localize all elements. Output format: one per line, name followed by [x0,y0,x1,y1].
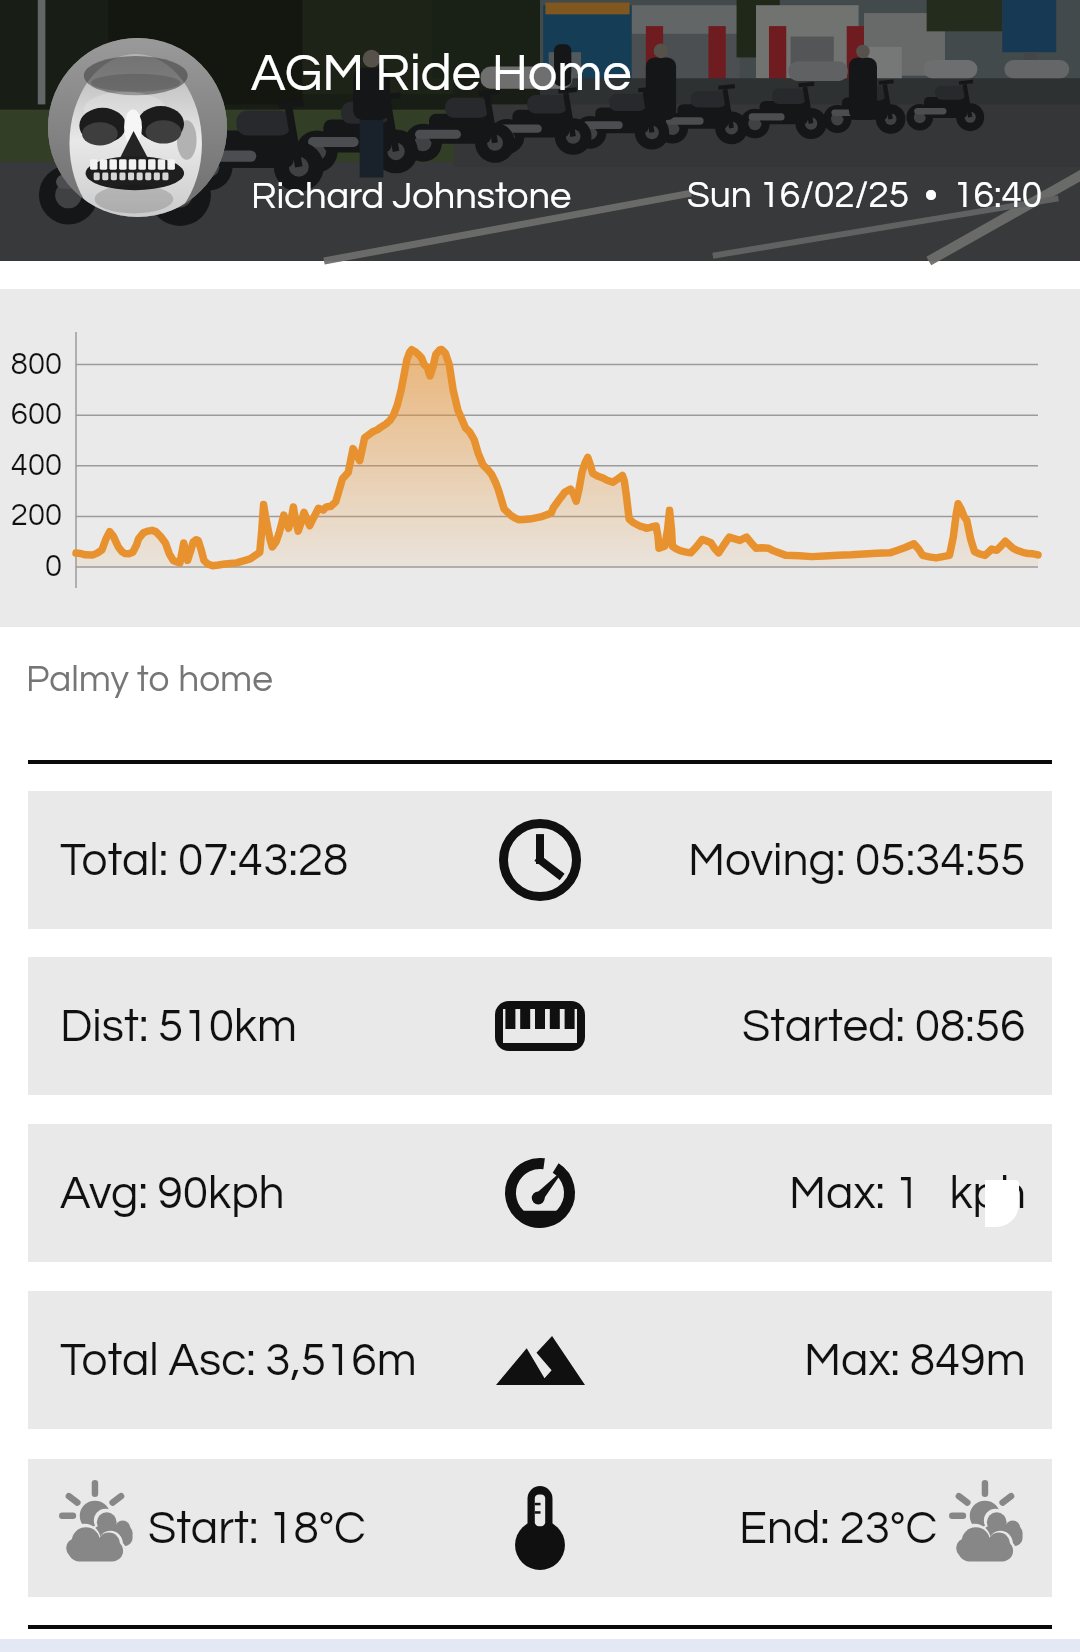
button[interactable]: Weather, partly cloudy [28,1459,1052,1597]
staticText: Avg: 90kph [60,1170,285,1217]
button[interactable]: Total Asc: 3,516m [28,1291,1052,1429]
staticText: End: 23°C [739,1505,938,1552]
staticText: 0 [0,551,62,583]
staticText: Max: 849m [804,1337,1026,1384]
other: Weather, partly cloudy [950,1490,1026,1566]
staticText: Richard Johnstone [251,177,572,216]
other: Distance [495,1001,585,1051]
staticText: Start: 18°C [148,1505,366,1552]
other: Average speed [498,1158,582,1228]
button[interactable]: Total: 07:43:28 [28,791,1052,929]
staticText: 800 [0,349,62,381]
button[interactable]: Avg: 90kph [28,1124,1052,1262]
button[interactable]: Dist: 510km [28,957,1052,1095]
staticText: 200 [0,500,62,532]
staticText: Max: 1 kph [789,1170,1026,1217]
staticText: Sun 16/02/25 • 16:40 [687,177,1043,215]
staticText: Total: 07:43:28 [60,837,349,884]
staticText: Total Asc: 3,516m [60,1337,417,1384]
other: Weather, partly cloudy [60,1490,136,1566]
staticText: 600 [0,399,62,431]
staticText: AGM Ride Home [251,47,632,101]
button[interactable]: Rider profile photo [48,38,227,217]
other: Temperature [514,1486,566,1570]
other: Ascent [496,1336,585,1385]
staticText: Moving: 05:34:55 [688,837,1026,884]
staticText: Dist: 510km [60,1003,297,1050]
staticText: Started: 08:56 [742,1003,1026,1050]
staticText: Palmy to home [26,661,273,699]
staticText: 400 [0,450,62,482]
other: Elapsed time [499,819,581,901]
